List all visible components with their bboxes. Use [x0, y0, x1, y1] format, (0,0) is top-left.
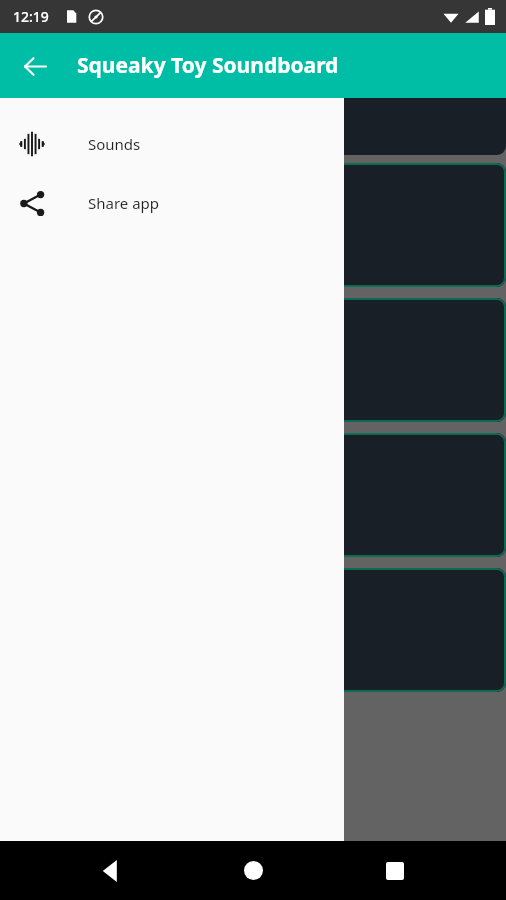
- button[interactable]: Back: [12, 43, 58, 89]
- button[interactable]: [258, 98, 506, 155]
- button[interactable]: Share app: [0, 173, 344, 232]
- staticText: Sounds: [88, 134, 141, 154]
- button[interactable]: 1: [0, 163, 247, 287]
- staticText: Share app: [88, 193, 160, 213]
- button[interactable]: Sounds: [0, 114, 344, 173]
- staticText: 12:19: [13, 7, 49, 26]
- button[interactable]: 8: [258, 568, 506, 692]
- button[interactable]: Home: [223, 841, 283, 900]
- button[interactable]: [0, 98, 247, 155]
- button[interactable]: 6: [258, 433, 506, 557]
- button[interactable]: 4: [258, 298, 506, 422]
- button[interactable]: Recent apps: [365, 841, 425, 900]
- button[interactable]: Back: [82, 841, 142, 900]
- button[interactable]: 2: [258, 163, 506, 287]
- staticText: Squeaky Toy Soundboard: [77, 51, 339, 80]
